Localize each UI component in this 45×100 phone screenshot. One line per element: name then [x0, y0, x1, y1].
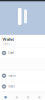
button[interactable]: Tab [0, 92, 11, 100]
button[interactable]: Tab [34, 92, 45, 100]
button[interactable]: Card [0, 48, 45, 58]
staticText: Wallet [2, 36, 14, 42]
staticText: Card [8, 51, 14, 55]
staticText: Cards [2, 42, 9, 46]
button[interactable]: Tab [22, 92, 34, 100]
staticText: Ticket [8, 85, 15, 88]
button[interactable]: Tab [11, 92, 22, 100]
staticText: Transit [8, 74, 16, 77]
button[interactable]: Ticket [0, 81, 45, 92]
button[interactable]: Transit [0, 70, 45, 81]
